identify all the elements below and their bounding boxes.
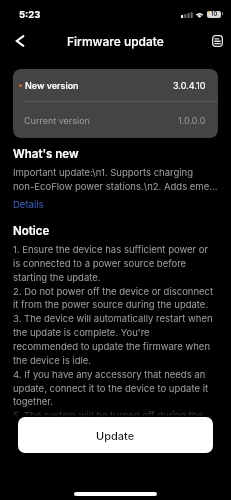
staticText: the update is complete. You're bbox=[13, 327, 150, 338]
staticText: is connected to a power source before bbox=[13, 258, 187, 269]
staticText: 5. The system will be turned off during … bbox=[13, 410, 204, 421]
staticText: update, connect it to the device to upda… bbox=[13, 383, 209, 394]
staticText: Details bbox=[13, 199, 44, 210]
button[interactable]: New version bbox=[13, 69, 218, 101]
staticText: 1.0.0.0 bbox=[178, 115, 206, 126]
staticText: 2. Do not power off the device or discon… bbox=[13, 286, 214, 297]
staticText: 10 bbox=[211, 11, 218, 18]
button[interactable]: Current version bbox=[13, 102, 218, 138]
staticText: it from the power source during the upda… bbox=[13, 299, 209, 310]
button[interactable]: Update history bbox=[203, 28, 231, 54]
staticText: 3. The device will automatically restart… bbox=[13, 313, 213, 324]
button[interactable]: Update bbox=[18, 417, 213, 453]
staticText: What's new bbox=[13, 147, 79, 161]
staticText: starting the update. bbox=[13, 272, 101, 283]
staticText: together. bbox=[13, 396, 54, 407]
staticText: the device is idle. bbox=[13, 355, 92, 366]
staticText: New version bbox=[25, 80, 79, 91]
staticText: Notice bbox=[13, 224, 50, 238]
staticText: 5:23 bbox=[19, 9, 41, 20]
button[interactable]: Details bbox=[13, 199, 44, 210]
staticText: Important update:\n1. Supports charging … bbox=[13, 165, 218, 193]
staticText: 3.0.4.10 bbox=[173, 80, 206, 91]
staticText: 1. Ensure the device has sufficient powe… bbox=[13, 244, 209, 255]
staticText: 4. If you have any accessory that needs … bbox=[13, 369, 206, 380]
staticText: recommended to update the firmware when bbox=[13, 341, 210, 352]
button[interactable]: Back bbox=[8, 28, 32, 54]
staticText: Update bbox=[96, 429, 135, 442]
staticText: Current version bbox=[24, 115, 90, 126]
staticText: Firmware update bbox=[67, 34, 164, 49]
